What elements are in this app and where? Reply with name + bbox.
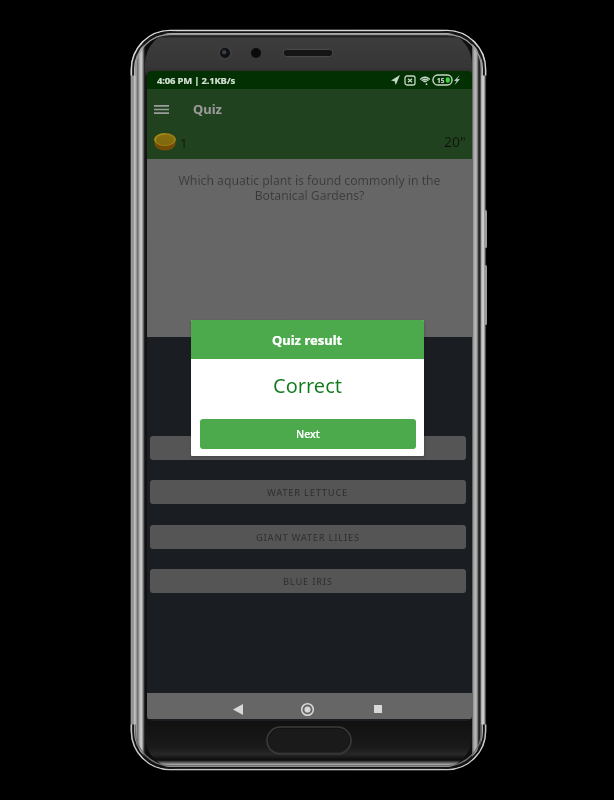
button[interactable]: Menu — [150, 99, 173, 120]
button[interactable]: Back — [221, 697, 255, 721]
staticText: Quiz result — [272, 331, 343, 349]
staticText: 1 — [180, 134, 188, 152]
staticText: GIANT WATER LILIES — [256, 531, 360, 544]
staticText: Which aquatic plant is found commonly in… — [157, 172, 462, 203]
staticText: 20" — [444, 132, 466, 151]
staticText: BLUE IRIS — [283, 575, 333, 588]
button[interactable]: BLUE IRIS — [150, 569, 466, 593]
staticText: Quiz — [193, 100, 223, 118]
staticText: WATER LETTUCE — [267, 486, 349, 499]
staticText: 4:06 PM | 2.1KB/s — [157, 74, 235, 87]
button[interactable] — [150, 436, 466, 460]
button[interactable]: WATER LETTUCE — [150, 480, 466, 504]
button[interactable]: GIANT WATER LILIES — [150, 525, 466, 549]
button[interactable]: Home — [290, 697, 324, 721]
button[interactable]: Next — [200, 419, 416, 449]
staticText: 15 — [437, 76, 445, 85]
button[interactable]: Recent apps — [361, 697, 395, 721]
staticText: Next — [296, 427, 320, 441]
staticText: Correct — [273, 372, 342, 399]
